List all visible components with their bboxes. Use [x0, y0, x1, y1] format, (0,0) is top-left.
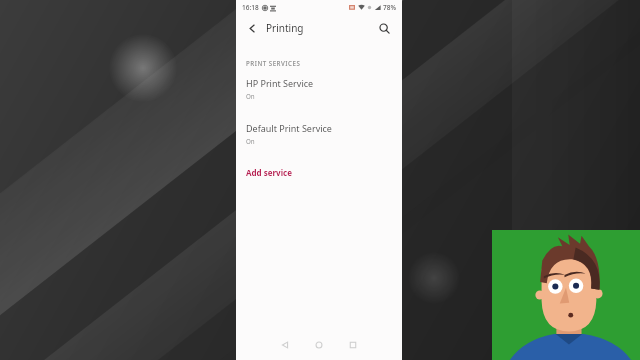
staticText: Add service: [246, 167, 292, 178]
staticText: HP Print Service: [246, 77, 314, 89]
button[interactable]: Recents: [340, 332, 366, 358]
staticText: On: [246, 92, 255, 100]
button[interactable]: Back: [243, 19, 261, 37]
button[interactable]: Home: [306, 332, 332, 358]
staticText: On: [246, 137, 255, 145]
button[interactable]: Back: [272, 332, 298, 358]
button[interactable]: Add service: [236, 161, 402, 184]
staticText: PRINT SERVICES: [246, 59, 301, 67]
button[interactable]: Search: [374, 18, 394, 38]
staticText: 16:18: [242, 3, 259, 12]
staticText: Printing: [266, 21, 304, 35]
staticText: Default Print Service: [246, 122, 332, 134]
button[interactable]: Default Print Service: [236, 118, 402, 149]
staticText: 78%: [383, 3, 396, 12]
button[interactable]: HP Print Service: [236, 73, 402, 104]
